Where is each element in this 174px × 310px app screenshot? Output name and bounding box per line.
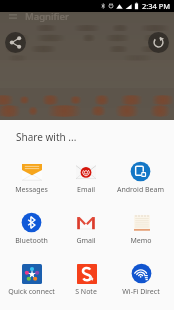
staticText: Bluetooth xyxy=(15,236,48,246)
button[interactable]: Messages xyxy=(4,156,59,207)
button[interactable]: Menu xyxy=(6,10,19,23)
staticText: Gmail xyxy=(76,236,96,246)
button[interactable]: Share xyxy=(5,32,26,53)
staticText: Messages xyxy=(15,185,48,195)
button[interactable]: Refresh xyxy=(148,32,169,53)
button[interactable]: Gmail xyxy=(58,207,113,258)
staticText: Quick connect xyxy=(8,287,55,297)
button[interactable]: Bluetooth xyxy=(4,207,59,258)
staticText: Share with ... xyxy=(16,130,77,144)
staticText: Android Beam xyxy=(117,185,164,195)
button[interactable]: Memo xyxy=(113,207,168,258)
button[interactable]: Quick connect xyxy=(4,258,59,309)
staticText: Email xyxy=(77,185,95,195)
button[interactable]: Android Beam xyxy=(113,156,168,207)
button[interactable]: Email xyxy=(58,156,113,207)
staticText: 2:34 PM xyxy=(142,1,171,11)
staticText: Wi-Fi Direct xyxy=(122,287,160,297)
staticText: Magnifier xyxy=(25,10,69,23)
button[interactable]: S Note xyxy=(58,258,113,309)
staticText: Memo xyxy=(130,236,152,246)
button[interactable]: Wi-Fi Direct xyxy=(113,258,168,309)
staticText: S Note xyxy=(75,287,97,297)
